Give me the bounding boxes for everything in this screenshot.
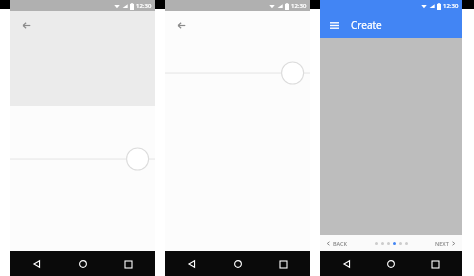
button[interactable]: Home: [229, 255, 247, 273]
staticText: NEXT: [435, 240, 449, 247]
button[interactable]: Navigate up: [170, 14, 192, 36]
staticText: BACK: [333, 240, 348, 247]
button[interactable]: Back: [338, 255, 356, 273]
button[interactable]: Recents: [426, 255, 444, 273]
button[interactable]: Recents: [119, 255, 137, 273]
staticText: 12:30: [443, 2, 459, 10]
button[interactable]: Home: [382, 255, 400, 273]
button[interactable]: BACK: [324, 240, 350, 247]
staticText: 12:30: [136, 2, 152, 10]
button[interactable]: Home: [74, 255, 92, 273]
staticText: Create: [351, 18, 382, 32]
button[interactable]: Back: [28, 255, 46, 273]
staticText: 12:30: [291, 2, 307, 10]
button[interactable]: Navigate up: [15, 14, 37, 36]
button[interactable]: Back: [183, 255, 201, 273]
button[interactable]: Recents: [274, 255, 292, 273]
button[interactable]: Open navigation menu: [325, 16, 343, 34]
button[interactable]: NEXT: [433, 240, 458, 247]
